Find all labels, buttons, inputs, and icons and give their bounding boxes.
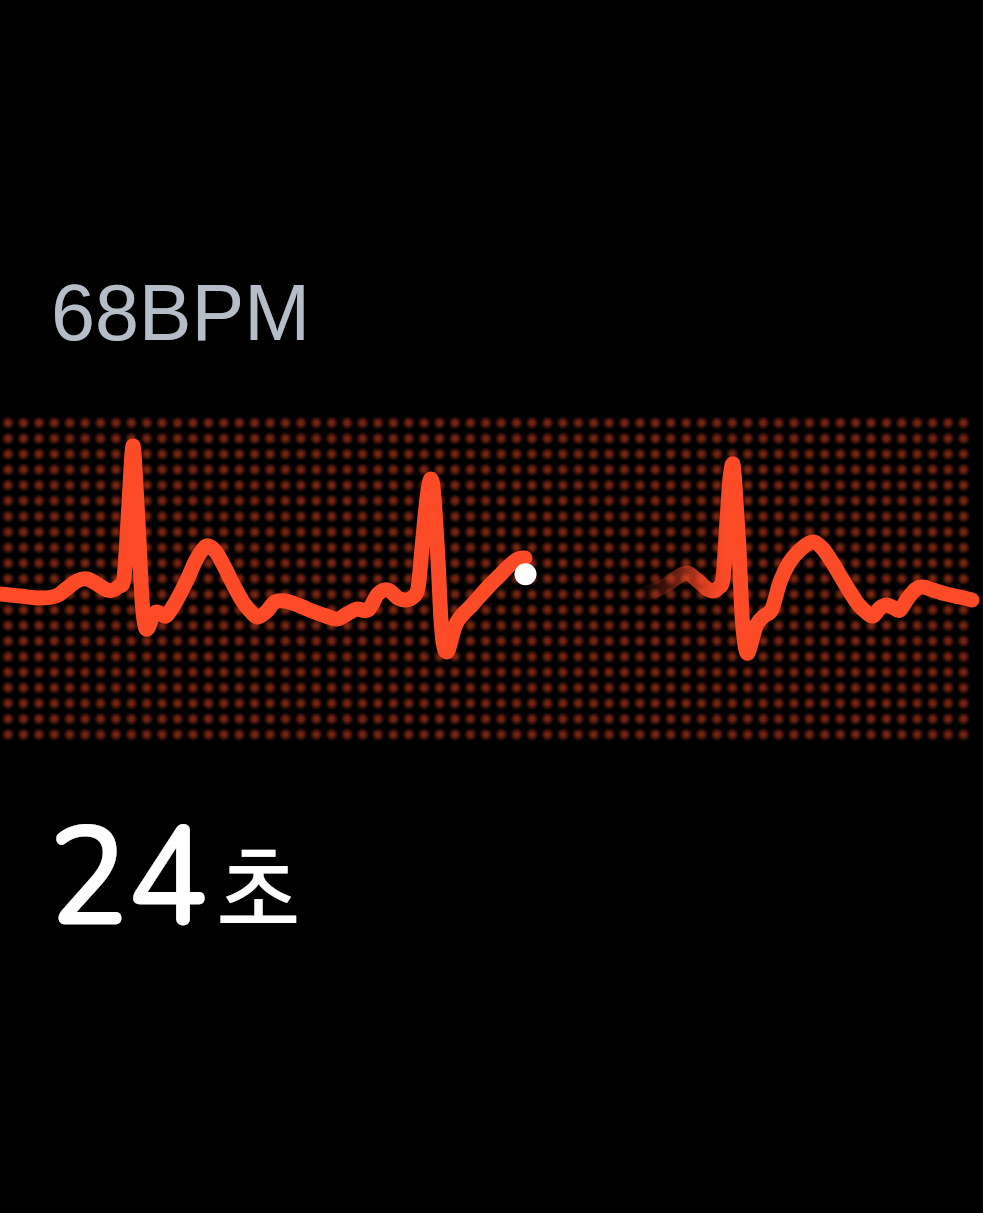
staticText: 24 — [48, 782, 209, 973]
staticText: 68BPM — [51, 268, 311, 356]
staticText: 초 — [217, 849, 301, 941]
button[interactable]: 68BPM — [0, 0, 983, 1213]
other: Electrocardiogram waveform — [0, 418, 983, 741]
